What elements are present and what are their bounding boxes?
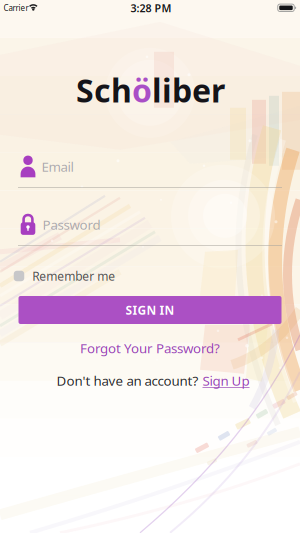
staticText: Remember me — [32, 268, 115, 284]
button[interactable]: Forgot Your Password? — [80, 339, 220, 357]
staticText: Don't have an account? — [56, 372, 198, 389]
staticText: Email — [41, 158, 73, 175]
button[interactable]: SIGN IN — [18, 296, 281, 324]
staticText: Forgot Your Password? — [80, 339, 220, 357]
staticText: 3:28 PM — [130, 1, 171, 15]
staticText: Carrier — [3, 3, 28, 13]
staticText: ö — [132, 69, 152, 111]
staticText: Password — [42, 216, 100, 233]
staticText: liber — [152, 69, 225, 111]
staticText: Sign Up — [202, 372, 249, 389]
button[interactable]: Remember me — [14, 268, 115, 284]
staticText: Sch — [76, 69, 132, 111]
staticText: SIGN IN — [125, 302, 174, 318]
button[interactable]: Sign Up — [202, 372, 249, 389]
